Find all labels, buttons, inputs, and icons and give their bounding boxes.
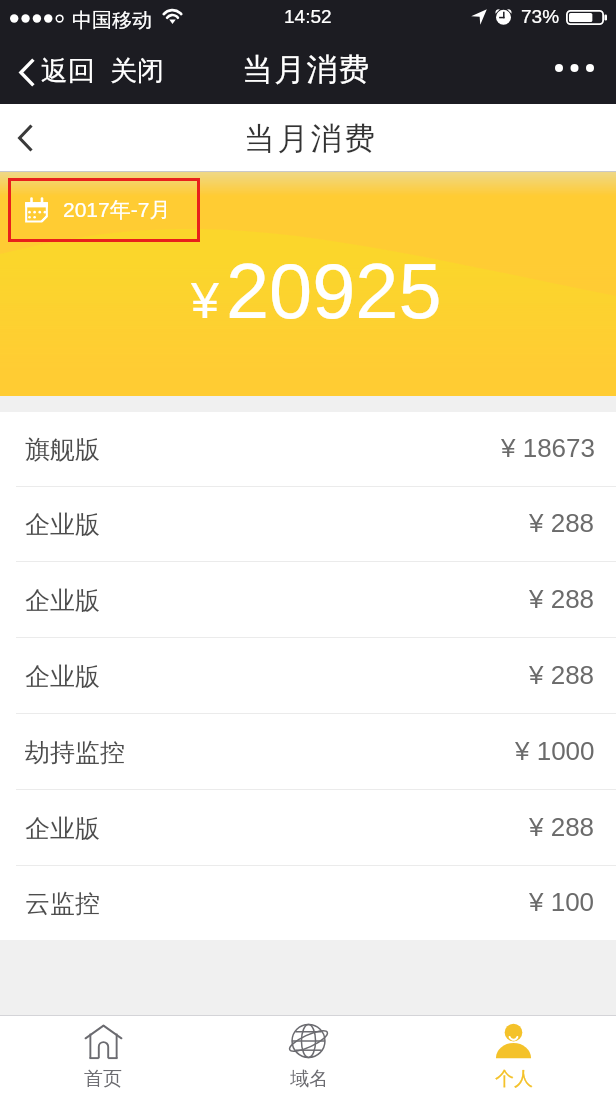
button[interactable]: Home [0, 1016, 206, 1096]
staticText: 企业版 [25, 661, 100, 692]
button[interactable]: 返回 [6, 40, 103, 104]
staticText: ¥ [191, 273, 219, 329]
staticText: 中国移动 [72, 8, 152, 33]
staticText: 企业版 [25, 509, 100, 540]
staticText: 域名 [290, 1067, 328, 1091]
staticText: ¥ 18673 [501, 433, 595, 462]
staticText: 返回 [41, 54, 95, 88]
staticText: ¥ 288 [529, 508, 595, 537]
button[interactable]: Domains [206, 1016, 411, 1096]
button[interactable]: 劫持监控 [0, 714, 616, 790]
staticText: 14:52 [284, 6, 332, 27]
staticText: ¥ 288 [529, 660, 595, 689]
staticText: 当月消费 [244, 119, 378, 158]
staticText: 当月消费 [242, 50, 371, 89]
staticText: 旗舰版 [25, 434, 100, 465]
staticText: 2017年-7月 [63, 197, 171, 223]
button[interactable]: 企业版 [0, 487, 616, 562]
staticText: ¥ 288 [529, 812, 595, 841]
button[interactable]: Back [0, 108, 51, 168]
staticText: 企业版 [25, 585, 100, 616]
staticText: 73% [521, 6, 560, 27]
button[interactable]: Profile [411, 1016, 616, 1096]
button[interactable]: 2017年-7月 [8, 178, 200, 242]
staticText: ¥ 100 [529, 887, 595, 916]
button[interactable]: 旗舰版 [0, 412, 616, 487]
button[interactable]: 云监控 [0, 866, 616, 940]
staticText: 劫持监控 [25, 737, 125, 768]
staticText: 首页 [84, 1067, 122, 1091]
button[interactable]: 关闭 [102, 40, 172, 104]
button[interactable]: More options [540, 40, 606, 104]
button[interactable]: 企业版 [0, 790, 616, 866]
staticText: 个人 [495, 1067, 533, 1091]
button[interactable]: 企业版 [0, 638, 616, 714]
staticText: ¥ 1000 [515, 736, 595, 765]
staticText: 关闭 [110, 54, 164, 88]
staticText: ¥ 288 [529, 584, 595, 613]
staticText: 云监控 [25, 888, 100, 919]
button[interactable]: 企业版 [0, 562, 616, 638]
staticText: 20925 [226, 248, 442, 335]
staticText: 企业版 [25, 813, 100, 844]
